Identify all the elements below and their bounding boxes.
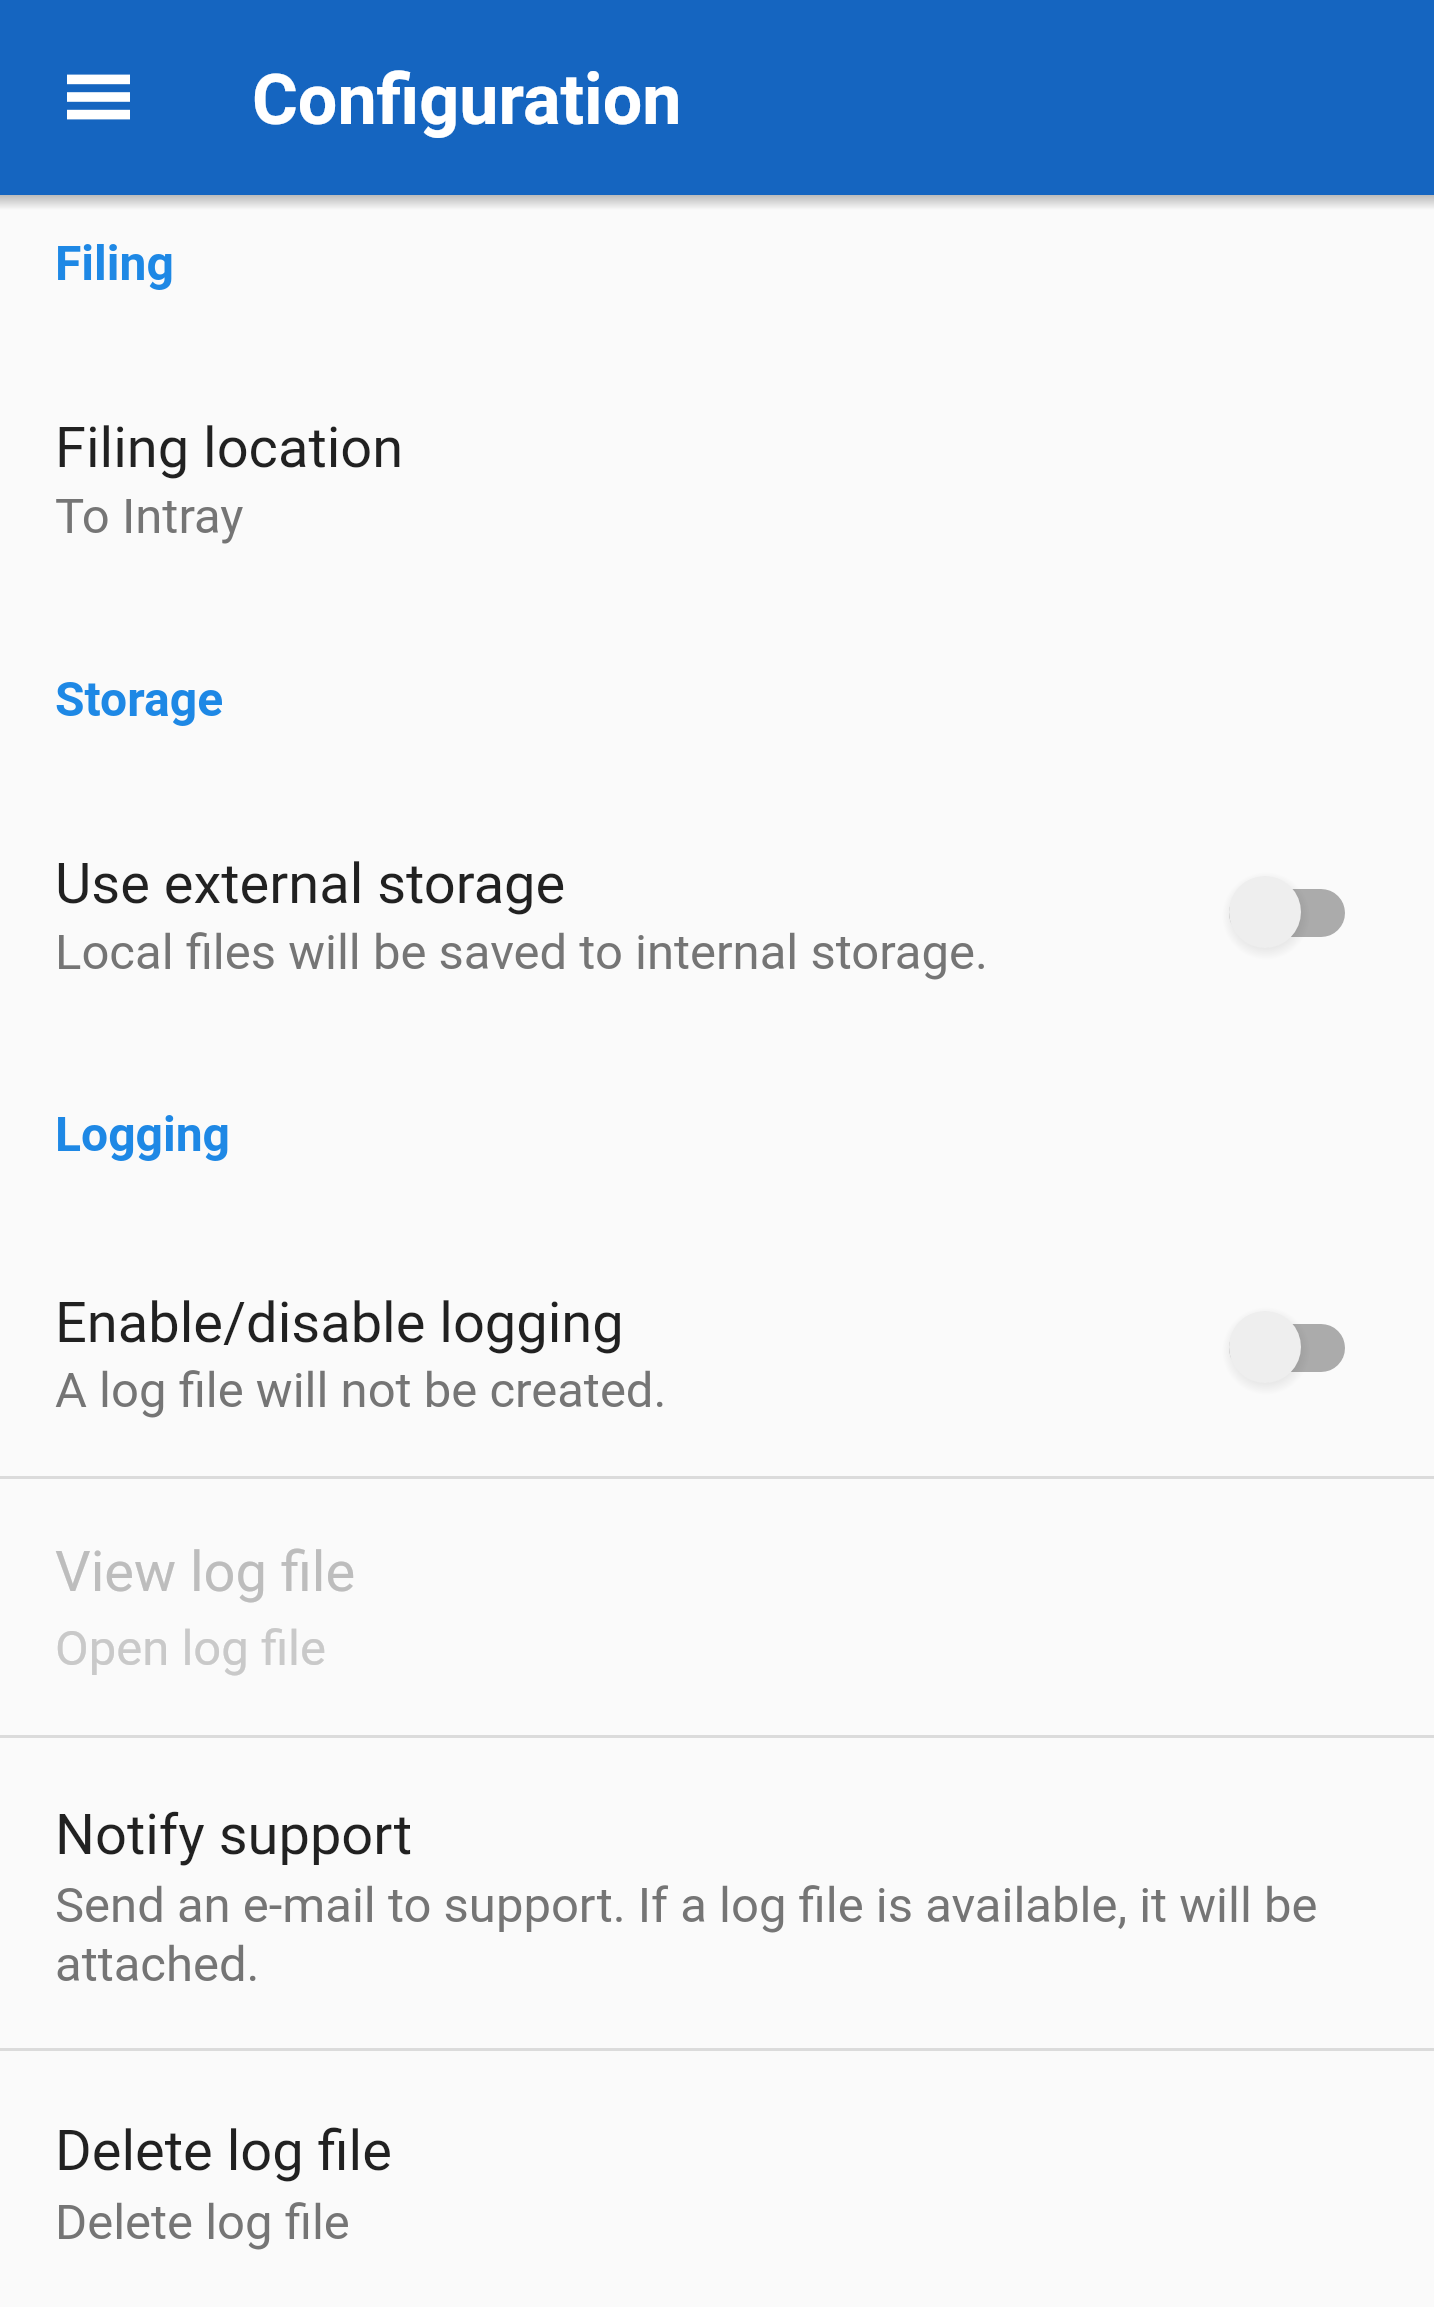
- button[interactable]: [0, 1738, 1434, 2046]
- staticText: Notify support: [55, 1802, 412, 1868]
- button[interactable]: [0, 1225, 1434, 1477]
- staticText: View log file: [55, 1539, 356, 1605]
- staticText: Delete log file: [55, 2194, 350, 2251]
- staticText: Filing location: [55, 415, 404, 481]
- staticText: Delete log file: [55, 2118, 392, 2184]
- staticText: Local files will be saved to internal st…: [55, 924, 988, 981]
- staticText: Logging: [55, 1106, 231, 1162]
- button[interactable]: [0, 2051, 1434, 2307]
- staticText: Storage: [55, 671, 224, 727]
- button[interactable]: [1205, 856, 1360, 968]
- button[interactable]: [0, 352, 1434, 602]
- staticText: Enable/disable logging: [55, 1290, 624, 1356]
- staticText: Open log file: [55, 1620, 327, 1677]
- staticText: Use external storage: [55, 851, 566, 917]
- staticText: A log file will not be created.: [55, 1362, 667, 1419]
- button[interactable]: [41, 40, 156, 155]
- button[interactable]: [1205, 1291, 1360, 1403]
- staticText: To Intray: [55, 488, 244, 545]
- staticText: Send an e-mail to support. If a log file…: [55, 1877, 1318, 1934]
- button[interactable]: [0, 1479, 1434, 1733]
- staticText: attached.: [55, 1936, 260, 1993]
- button[interactable]: [0, 790, 1434, 1040]
- staticText: Configuration: [252, 59, 682, 141]
- staticText: Filing: [55, 235, 174, 291]
